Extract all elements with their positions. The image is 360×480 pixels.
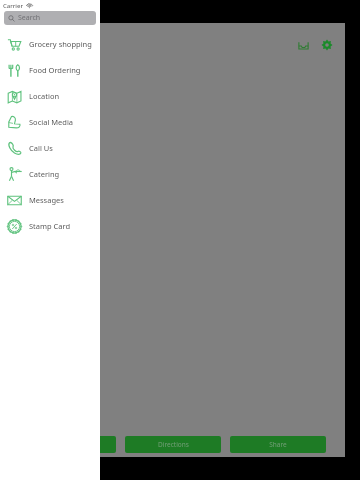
button[interactable]: Food Ordering	[0, 57, 100, 83]
button[interactable]: Stamp Card	[0, 213, 100, 239]
button[interactable]: Inbox	[294, 36, 312, 54]
staticText: Share	[269, 440, 287, 449]
button[interactable]: Share	[230, 436, 326, 453]
staticText: Directions	[158, 440, 189, 449]
button[interactable]: Search	[4, 11, 96, 25]
button[interactable]: Directions	[125, 436, 221, 453]
button[interactable]: Messages	[0, 187, 100, 213]
staticText: Food Ordering	[29, 65, 81, 75]
staticText: Call Us	[29, 143, 53, 153]
button[interactable]: Catering	[0, 161, 100, 187]
button[interactable]: Location	[0, 83, 100, 109]
button[interactable]: Grocery shopping	[0, 31, 100, 57]
staticText: Location	[29, 91, 60, 101]
staticText: Grocery shopping	[29, 39, 92, 49]
staticText: Carrier	[3, 2, 23, 10]
staticText: Search	[18, 13, 41, 23]
button[interactable]: Call Us	[0, 135, 100, 161]
staticText: Catering	[29, 169, 60, 179]
button[interactable]: Social Media	[0, 109, 100, 135]
button[interactable]: Call	[20, 436, 116, 453]
staticText: Messages	[29, 195, 64, 205]
staticText: Social Media	[29, 117, 74, 127]
staticText: Stamp Card	[29, 221, 71, 231]
button[interactable]: Settings	[318, 36, 336, 54]
